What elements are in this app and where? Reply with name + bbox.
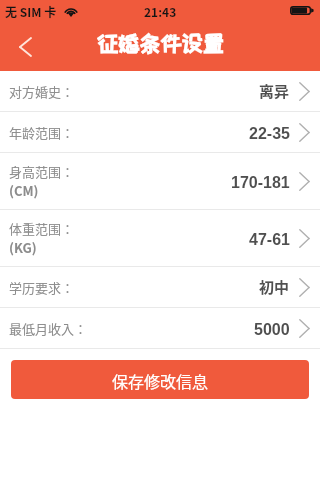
staticText: 征婚条件设置 xyxy=(97,32,224,55)
staticText: 离异 xyxy=(259,80,290,102)
staticText: (CM) xyxy=(9,181,39,200)
button[interactable]: 年龄范围： xyxy=(0,112,320,153)
button[interactable]: 最低月收入： xyxy=(0,308,320,349)
staticText: 170-181 xyxy=(231,174,290,192)
button[interactable]: 学历要求： xyxy=(0,267,320,308)
staticText: 学历要求： xyxy=(9,278,75,297)
staticText: 最低月收入： xyxy=(9,319,88,338)
button[interactable]: Back xyxy=(0,22,50,71)
button[interactable]: 对方婚史： xyxy=(0,71,320,112)
staticText: 5000 xyxy=(254,321,290,339)
button[interactable]: 身高范围： xyxy=(0,153,320,210)
staticText: 体重范围： xyxy=(9,219,75,238)
staticText: 保存修改信息 xyxy=(112,369,209,392)
staticText: 身高范围： xyxy=(9,162,75,181)
button[interactable]: 保存修改信息 xyxy=(11,360,309,399)
staticText: 47-61 xyxy=(249,231,290,249)
staticText: 初中 xyxy=(259,276,290,298)
staticText: 年龄范围： xyxy=(9,123,75,142)
staticText: 21:43 xyxy=(144,3,177,20)
staticText: 22-35 xyxy=(249,125,290,143)
staticText: 对方婚史： xyxy=(9,82,75,101)
staticText: (KG) xyxy=(9,238,37,257)
staticText: 无 SIM 卡 xyxy=(5,3,57,20)
button[interactable]: 体重范围： xyxy=(0,210,320,267)
